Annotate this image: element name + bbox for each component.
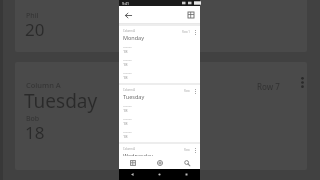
button[interactable]: More options — [192, 88, 198, 94]
staticText: 9:41 — [122, 1, 129, 6]
staticText: Column — [123, 45, 132, 48]
staticText: Phil — [26, 11, 39, 21]
button[interactable]: Column — [123, 58, 200, 69]
staticText: Column A — [123, 88, 136, 92]
staticText: 20 — [25, 18, 45, 41]
staticText: Column A — [26, 80, 61, 90]
staticText: Row 7 — [257, 81, 280, 92]
staticText: Column A — [123, 29, 136, 33]
staticText: Column — [123, 104, 132, 107]
staticText: Row 1 — [182, 30, 190, 34]
button[interactable]: Back — [119, 169, 146, 180]
staticText: Row — [184, 148, 190, 152]
staticText: Tuesday — [123, 93, 145, 100]
button[interactable]: Column — [123, 71, 200, 82]
staticText: Column A — [123, 147, 136, 151]
staticText: Wednesday — [123, 152, 153, 156]
button[interactable]: More options — [192, 29, 198, 35]
staticText: 18 — [123, 75, 128, 80]
staticText: Bob — [26, 114, 40, 124]
button[interactable]: More options — [295, 75, 307, 89]
staticText: 18 — [25, 121, 45, 144]
staticText: Column — [123, 117, 132, 120]
button[interactable]: Column A — [119, 144, 200, 156]
button[interactable]: Column A — [15, 62, 307, 170]
button[interactable]: Phil — [15, 0, 307, 52]
button[interactable]: Table view — [184, 8, 198, 22]
button[interactable]: Column — [123, 130, 200, 141]
button[interactable]: Recents — [173, 169, 200, 180]
button[interactable]: Home — [146, 169, 173, 180]
staticText: Column — [123, 71, 132, 74]
staticText: Row — [184, 89, 190, 93]
staticText: Tuesday — [24, 88, 98, 114]
staticText: Monday — [123, 34, 144, 41]
button[interactable]: Column A — [119, 85, 200, 142]
button[interactable]: More options — [192, 147, 198, 153]
staticText: 18 — [123, 134, 128, 139]
staticText: 18 — [123, 49, 128, 54]
staticText: 18 — [123, 108, 128, 113]
staticText: 18 — [123, 121, 128, 126]
button[interactable]: Column — [123, 104, 200, 115]
button[interactable]: Search — [173, 156, 200, 169]
button[interactable]: Sheets — [119, 156, 146, 169]
staticText: Column — [123, 58, 132, 61]
button[interactable]: Back — [121, 8, 135, 22]
button[interactable]: Column — [123, 117, 200, 128]
staticText: 18 — [123, 62, 128, 67]
staticText: Column — [123, 130, 132, 133]
button[interactable]: Add — [146, 156, 173, 169]
button[interactable]: Column A — [119, 26, 200, 83]
button[interactable]: Column — [123, 45, 200, 56]
